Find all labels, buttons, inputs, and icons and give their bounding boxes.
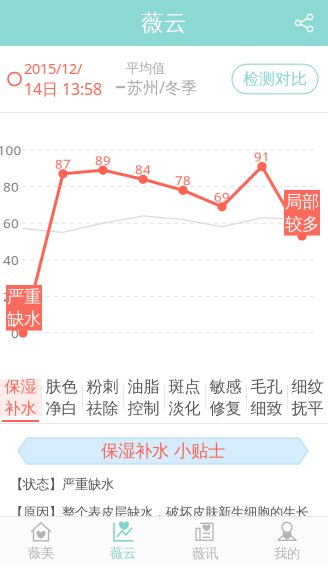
- button[interactable]: 薇讯: [164, 517, 246, 565]
- staticText: 苏州/冬季: [127, 77, 197, 98]
- button[interactable]: 保湿: [0, 378, 41, 423]
- button[interactable]: 斑点: [164, 378, 205, 423]
- staticText: 2015/12/: [24, 59, 82, 78]
- staticText: 100: [0, 141, 21, 159]
- staticText: 平均值: [126, 60, 165, 77]
- staticText: 淡化: [168, 398, 200, 418]
- staticText: 细致: [250, 398, 282, 418]
- staticText: 抚平: [291, 398, 323, 418]
- button[interactable]: 肤色: [41, 378, 82, 423]
- staticText: 控制: [127, 398, 159, 418]
- staticText: 40: [3, 251, 19, 269]
- staticText: 净白: [45, 398, 77, 418]
- button[interactable]: 薇美: [0, 517, 82, 565]
- button[interactable]: 检测对比: [232, 64, 318, 94]
- staticText: 0: [19, 314, 27, 332]
- staticText: 祛除: [86, 398, 118, 418]
- button[interactable]: 薇云: [82, 517, 164, 565]
- staticText: 80: [3, 178, 19, 195]
- staticText: 【状态】严重缺水: [10, 476, 114, 492]
- staticText: 0: [11, 324, 19, 342]
- button[interactable]: 敏感: [205, 378, 246, 423]
- staticText: 84: [135, 160, 151, 178]
- staticText: 局部: [285, 191, 319, 212]
- staticText: 【原因】整个表皮层缺水，破坏皮肤新生细胞的生长: [10, 504, 309, 521]
- staticText: 补水: [4, 398, 36, 418]
- staticText: 毛孔: [250, 377, 282, 396]
- staticText: 14日 13:58: [24, 78, 102, 99]
- button[interactable]: 毛孔: [246, 378, 287, 423]
- staticText: 78: [175, 171, 191, 189]
- staticText: 油脂: [127, 377, 159, 396]
- staticText: 薇讯: [192, 545, 218, 562]
- staticText: 69: [214, 188, 230, 205]
- staticText: 保湿补水 小贴士: [101, 440, 225, 462]
- staticText: 斑点: [168, 377, 200, 396]
- button[interactable]: 粉刺: [82, 378, 123, 423]
- button[interactable]: 分享: [286, 5, 322, 41]
- staticText: 肤色: [45, 377, 77, 396]
- staticText: 我的: [274, 545, 300, 562]
- staticText: 严重: [7, 286, 41, 307]
- staticText: 60: [3, 214, 19, 232]
- staticText: 检测对比: [243, 69, 307, 89]
- staticText: 细纹: [291, 377, 323, 396]
- staticText: 缺水: [7, 308, 41, 330]
- button[interactable]: 细纹: [287, 378, 328, 423]
- staticText: 20: [3, 287, 19, 305]
- staticText: 敏感: [209, 377, 241, 396]
- button[interactable]: 我的: [246, 517, 328, 565]
- staticText: 粉刺: [86, 377, 118, 396]
- staticText: 较多: [285, 213, 319, 235]
- staticText: 91: [254, 147, 270, 165]
- staticText: 87: [55, 155, 71, 172]
- staticText: 保湿: [4, 377, 36, 396]
- staticText: 薇云: [141, 9, 187, 37]
- staticText: 修复: [209, 398, 241, 418]
- button[interactable]: 油脂: [123, 378, 164, 423]
- staticText: 53: [294, 217, 310, 235]
- staticText: 89: [95, 151, 111, 169]
- staticText: 薇美: [28, 545, 54, 561]
- staticText: 薇云: [110, 545, 136, 561]
